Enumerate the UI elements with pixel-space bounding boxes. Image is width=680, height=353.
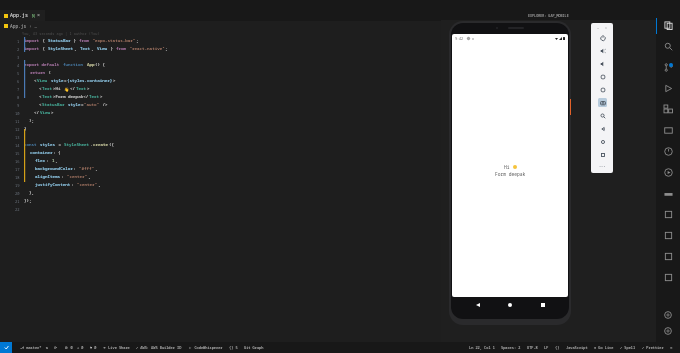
staticText: () {: [95, 62, 106, 68]
button[interactable]: Database: [656, 225, 680, 246]
button[interactable]: {} 5: [226, 342, 241, 353]
button[interactable]: Power: [593, 31, 611, 44]
button[interactable]: Volume down: [593, 57, 611, 70]
button[interactable]: App.js: [0, 10, 45, 21]
button[interactable]: Settings: [656, 323, 680, 339]
staticText: 22: [15, 207, 20, 212]
button[interactable]: Accounts: [656, 307, 680, 323]
button[interactable]: Recents: [537, 299, 549, 311]
staticText: <: [24, 94, 42, 100]
button[interactable]: Zoom: [593, 109, 611, 122]
button[interactable]: ⊗ 0 ⚠ 0: [61, 342, 87, 353]
staticText: "center": [77, 182, 98, 188]
button[interactable]: Accounts2: [656, 267, 680, 288]
staticText: >Hi: [53, 86, 64, 92]
staticText: create: [93, 142, 109, 148]
staticText: Text: [80, 46, 91, 52]
staticText: 4: [17, 63, 20, 68]
button[interactable]: Search: [656, 36, 680, 57]
button[interactable]: Back: [472, 299, 484, 311]
button[interactable]: Remote Explorer: [656, 120, 680, 141]
staticText: >: [113, 78, 116, 84]
button[interactable]: Rotate left: [593, 70, 611, 83]
staticText: ;: [136, 38, 139, 44]
button[interactable]: LF: [541, 342, 552, 353]
button[interactable]: Remote: [0, 342, 12, 353]
button[interactable]: Back: [593, 122, 611, 135]
button[interactable]: {}: [552, 342, 563, 353]
button[interactable]: Volume up: [593, 44, 611, 57]
button[interactable]: Share: [656, 204, 680, 225]
staticText: 18: [15, 175, 20, 180]
button[interactable]: Explorer: [656, 15, 680, 36]
button[interactable]: Timeline: [656, 141, 680, 162]
button[interactable]: Extensions: [656, 99, 680, 120]
button[interactable]: Snippets: [656, 246, 680, 267]
button[interactable]: More: [593, 161, 611, 171]
button[interactable]: ◉ Go Live: [591, 342, 617, 353]
button[interactable]: Git Graph: [241, 342, 267, 353]
button[interactable]: ⎇ master* ⇅: [17, 342, 51, 353]
staticText: ⎇ master* ⇅: [20, 345, 48, 350]
button[interactable]: ⟳: [51, 342, 61, 353]
staticText: UTF-8: [527, 345, 538, 350]
button[interactable]: ⚑ 0: [87, 342, 100, 353]
staticText: flex: [35, 158, 46, 164]
button[interactable]: JavaScript: [563, 342, 591, 353]
staticText: "expo-status-bar": [90, 38, 136, 44]
staticText: App: [87, 62, 95, 68]
staticText: style: [51, 78, 64, 84]
button[interactable]: ⚭ Live Share: [100, 342, 133, 353]
staticText: import: [24, 38, 40, 44]
button[interactable]: Source Control: [656, 57, 680, 78]
staticText: import: [24, 46, 40, 52]
staticText: App.js: [10, 12, 29, 19]
button[interactable]: ▷ CodeWhisperer: [185, 342, 226, 353]
staticText: –: [597, 25, 600, 30]
staticText: 3: [17, 55, 20, 60]
button[interactable]: ✓ Prettier: [639, 342, 667, 353]
staticText: ,: [91, 46, 97, 52]
staticText: from: [116, 46, 127, 52]
button[interactable]: ❐: [667, 342, 676, 353]
button[interactable]: UTF-8: [524, 342, 541, 353]
staticText: :: [46, 158, 52, 164]
staticText: 6: [17, 79, 20, 84]
staticText: "auto": [84, 102, 100, 108]
button[interactable]: Home: [593, 135, 611, 148]
button[interactable]: Run and Debug: [656, 78, 680, 99]
staticText: 13: [15, 135, 20, 140]
button[interactable]: Ln 22, Col 1: [466, 342, 498, 353]
staticText: ❐: [670, 346, 673, 350]
button[interactable]: Rotate right: [593, 83, 611, 96]
button[interactable]: Home: [504, 299, 516, 311]
button[interactable]: ✓ AWS: AWS Builder ID: [133, 342, 185, 353]
button[interactable]: ✓ Spell: [617, 342, 639, 353]
button[interactable]: Docker: [656, 183, 680, 204]
staticText: 16: [15, 159, 20, 164]
staticText: Spaces: 2: [501, 345, 521, 350]
staticText: >Form deepak</: [53, 94, 89, 100]
staticText: ,: [88, 174, 91, 180]
button[interactable]: Test: [656, 162, 680, 183]
staticText: 9: [17, 103, 20, 108]
staticText: StatusBar: [48, 38, 71, 44]
staticText: [24, 166, 35, 172]
staticText: >: [51, 110, 54, 116]
button[interactable]: Overview: [593, 148, 611, 161]
staticText: StyleSheet: [48, 46, 74, 52]
staticText: <: [24, 78, 37, 84]
staticText: ⟳: [54, 346, 58, 350]
staticText: LF: [544, 345, 549, 350]
button[interactable]: Spaces: 2: [498, 342, 524, 353]
button[interactable]: Screenshot: [593, 96, 611, 109]
